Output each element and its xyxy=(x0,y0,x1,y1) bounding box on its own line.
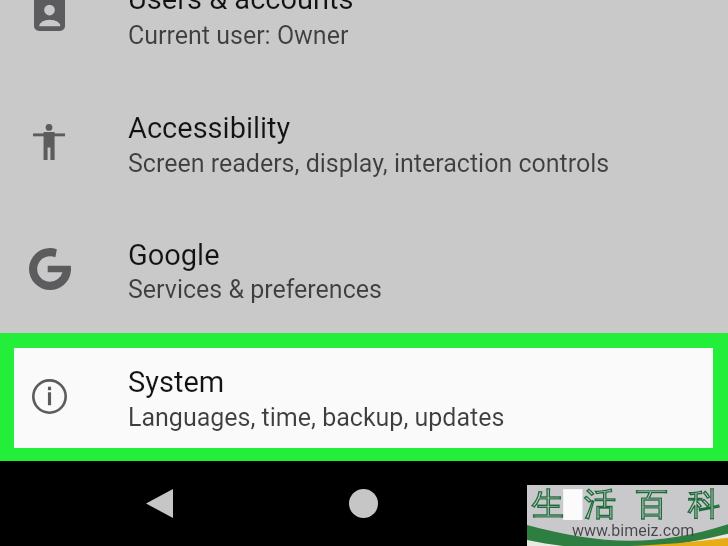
staticText: Accessibility xyxy=(128,111,291,145)
staticText: 百 xyxy=(636,484,668,524)
staticText: System xyxy=(128,365,225,399)
button[interactable]: System xyxy=(14,348,713,448)
staticText: Screen readers, display, interaction con… xyxy=(128,149,610,178)
staticText: Google xyxy=(128,238,220,272)
staticText: Languages, time, backup, updates xyxy=(128,403,505,432)
button[interactable]: Google xyxy=(0,228,728,328)
staticText: Current user: Owner xyxy=(128,21,349,50)
button[interactable]: Accessibility xyxy=(0,100,728,200)
staticText: www.bimeiz.com xyxy=(572,521,695,540)
staticText: Users & accounts xyxy=(128,0,354,16)
staticText: Services & preferences xyxy=(128,275,382,304)
button[interactable]: Back xyxy=(146,489,173,518)
staticText: 活 xyxy=(584,484,616,524)
button[interactable]: Home xyxy=(349,489,378,518)
button[interactable]: Users & accounts xyxy=(0,0,728,70)
staticText: 生 xyxy=(532,484,564,524)
staticText: 科 xyxy=(688,484,720,524)
